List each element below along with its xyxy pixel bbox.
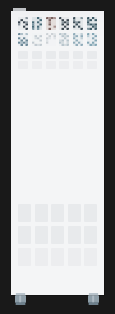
button[interactable]: Support bbox=[15, 293, 26, 305]
button[interactable]: Item 6 bbox=[87, 17, 97, 30]
button[interactable]: Item 13 bbox=[87, 33, 97, 46]
button[interactable]: Item 8 bbox=[18, 33, 28, 46]
button[interactable]: Item 11 bbox=[59, 33, 69, 46]
button[interactable]: Item 4 bbox=[59, 17, 69, 30]
button[interactable]: Item 10 bbox=[46, 33, 56, 46]
button[interactable]: Item 5 bbox=[73, 17, 83, 30]
button[interactable]: Support bbox=[88, 293, 99, 305]
button[interactable]: Item 3 bbox=[46, 17, 56, 30]
button[interactable]: Item 9 bbox=[32, 33, 42, 46]
button[interactable]: Item 2 bbox=[32, 17, 42, 30]
button[interactable]: Item 1 bbox=[18, 17, 28, 30]
button[interactable]: Item 12 bbox=[73, 33, 83, 46]
